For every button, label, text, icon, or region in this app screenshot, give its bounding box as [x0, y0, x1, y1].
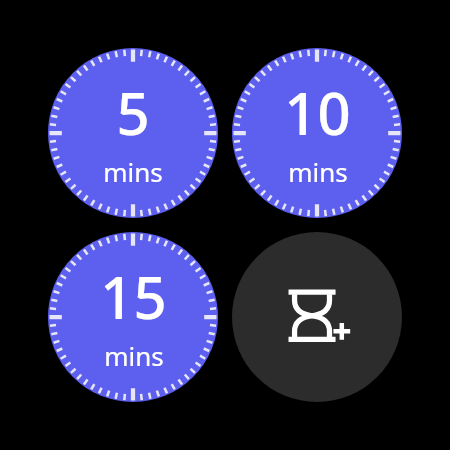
staticText: 15: [100, 257, 167, 336]
staticText: mins: [104, 338, 164, 373]
staticText: mins: [288, 154, 348, 189]
staticText: 10: [284, 73, 351, 152]
staticText: mins: [103, 154, 163, 189]
button[interactable]: Add custom timer: [232, 232, 402, 402]
button[interactable]: 15: [48, 232, 218, 402]
staticText: 5: [116, 73, 150, 152]
button[interactable]: 10: [232, 48, 402, 218]
button[interactable]: 5: [48, 48, 218, 218]
